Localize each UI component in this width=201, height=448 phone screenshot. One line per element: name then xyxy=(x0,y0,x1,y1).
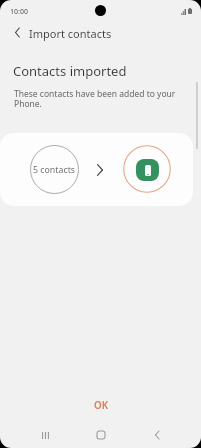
button[interactable]: OK xyxy=(71,394,131,416)
button[interactable]: 5 contacts xyxy=(0,133,193,206)
staticText: 5 contacts xyxy=(33,164,76,176)
staticText: Import contacts xyxy=(29,26,112,41)
button[interactable]: Recents xyxy=(28,422,62,448)
staticText: OK xyxy=(94,399,109,412)
staticText: These contacts have been added to your P… xyxy=(14,88,186,110)
staticText: Contacts imported xyxy=(13,62,127,80)
button[interactable]: Home xyxy=(84,422,118,448)
button[interactable]: Back xyxy=(140,422,174,448)
staticText: 10:00 xyxy=(10,7,28,17)
button[interactable]: Back xyxy=(6,21,29,44)
